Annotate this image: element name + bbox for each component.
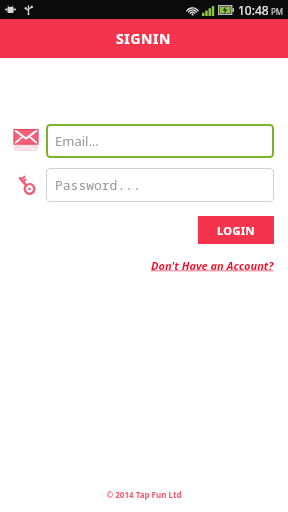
other: Password: [14, 173, 38, 197]
staticText: Don't Have an Account?: [151, 258, 274, 273]
other: Email: [14, 128, 38, 154]
staticText: Email...: [55, 132, 99, 150]
button[interactable]: Don't Have an Account?: [151, 258, 274, 273]
staticText: SIGNIN: [116, 29, 172, 48]
staticText: © 2014 Tap Fun Ltd: [0, 489, 288, 500]
button[interactable]: Password...: [46, 168, 274, 202]
staticText: Password...: [55, 176, 141, 194]
button[interactable]: Email...: [46, 124, 274, 158]
staticText: PM: [271, 6, 284, 17]
button[interactable]: LOGIN: [198, 216, 274, 244]
staticText: LOGIN: [217, 223, 255, 238]
staticText: 10:48: [238, 2, 269, 18]
